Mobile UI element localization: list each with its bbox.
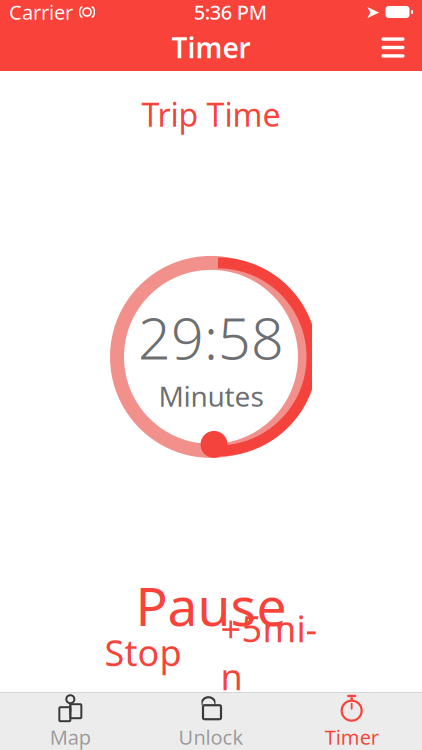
staticText: +5min: [220, 604, 317, 700]
staticText: Stop: [104, 628, 181, 676]
staticText: Pause: [135, 570, 286, 641]
staticText: ➤: [365, 2, 380, 22]
button[interactable]: Stop: [103, 632, 183, 672]
staticText: Unlock: [178, 724, 243, 750]
button[interactable]: Unlock: [141, 693, 281, 750]
button[interactable]: Timer: [281, 693, 422, 750]
button[interactable]: Map: [0, 693, 141, 750]
button[interactable]: Pause: [0, 578, 422, 632]
staticText: 5:36 PM: [194, 0, 267, 25]
staticText: Trip Time: [141, 93, 280, 135]
staticText: Minutes: [158, 377, 263, 415]
button[interactable]: +5min: [219, 632, 319, 672]
staticText: 29:58: [138, 299, 284, 375]
staticText: Timer: [325, 724, 379, 750]
staticText: Timer: [171, 29, 250, 66]
staticText: Map: [50, 724, 91, 750]
button[interactable]: Menu: [369, 25, 417, 69]
staticText: Carrier: [9, 0, 73, 25]
